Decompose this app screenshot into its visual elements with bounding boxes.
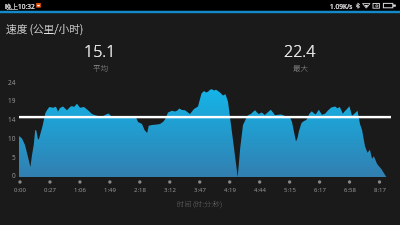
staticText: 6:17 <box>314 186 326 194</box>
staticText: 4:44 <box>254 186 266 194</box>
staticText: 0 <box>12 171 16 180</box>
staticText: 5 <box>12 153 16 162</box>
staticText: 平均 <box>93 62 108 73</box>
staticText: 10 <box>8 134 16 143</box>
staticText: 0:00 <box>14 186 26 194</box>
staticText: 4:19 <box>224 186 236 194</box>
staticText: 8:17 <box>374 186 386 194</box>
staticText: 3:47 <box>194 186 206 194</box>
staticText: 晚上10:32 <box>5 2 35 11</box>
staticText: 时间 (时:分:秒) <box>177 199 223 209</box>
staticText: 6:58 <box>344 186 356 194</box>
staticText: 0:27 <box>44 186 56 194</box>
staticText: 2:18 <box>134 186 146 194</box>
staticText: 5:15 <box>284 186 296 194</box>
staticText: 1:49 <box>104 186 116 194</box>
staticText: 最大 <box>293 62 308 73</box>
staticText: 1.09K/s <box>330 2 353 11</box>
staticText: 22.4 <box>284 40 316 62</box>
staticText: 1:06 <box>74 186 86 194</box>
staticText: 速度 (公里/小时) <box>6 21 84 36</box>
staticText: 24 <box>8 78 16 87</box>
staticText: 19 <box>8 96 16 105</box>
staticText: 14 <box>8 115 16 124</box>
staticText: 15.1 <box>84 40 116 62</box>
staticText: 3:12 <box>164 186 176 194</box>
